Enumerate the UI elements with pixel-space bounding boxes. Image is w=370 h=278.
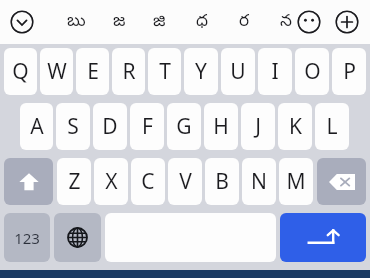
button[interactable]: M (279, 158, 313, 205)
staticText: G (176, 112, 192, 141)
button[interactable]: L (315, 103, 349, 150)
button[interactable]: 123 (4, 213, 50, 262)
button[interactable]: N (242, 158, 276, 205)
button[interactable]: న (270, 6, 302, 38)
staticText: B (215, 167, 229, 196)
staticText: Q (12, 57, 29, 86)
button[interactable]: Switch language (54, 213, 101, 262)
button[interactable]: బు (60, 6, 92, 38)
staticText: ర (239, 11, 250, 34)
button[interactable]: Q (4, 48, 37, 95)
button[interactable]: A (20, 103, 53, 150)
button[interactable]: జి (143, 6, 175, 38)
staticText: T (159, 57, 171, 86)
button[interactable]: More options (335, 10, 359, 34)
button[interactable]: R (112, 48, 145, 95)
button[interactable]: X (94, 158, 128, 205)
staticText: H (213, 112, 229, 141)
staticText: I (271, 57, 279, 86)
button[interactable]: G (167, 103, 201, 150)
staticText: X (105, 167, 118, 196)
staticText: Z (68, 167, 81, 196)
staticText: బు (67, 11, 86, 34)
staticText: న (280, 11, 292, 34)
staticText: S (67, 112, 79, 141)
button[interactable]: Enter (280, 213, 366, 262)
button[interactable]: S (56, 103, 90, 150)
button[interactable]: I (258, 48, 292, 95)
staticText: 123 (14, 228, 40, 248)
button[interactable]: Backspace (317, 158, 366, 205)
staticText: P (343, 57, 356, 86)
button[interactable]: O (295, 48, 329, 95)
staticText: Y (195, 57, 207, 86)
button[interactable]: D (93, 103, 127, 150)
button[interactable]: H (204, 103, 238, 150)
button[interactable]: J (241, 103, 275, 150)
staticText: జ (113, 11, 126, 34)
staticText: J (255, 112, 261, 141)
button[interactable]: Shift (4, 158, 53, 205)
staticText: C (141, 167, 155, 196)
staticText: F (142, 112, 153, 141)
staticText: A (30, 112, 44, 141)
button[interactable]: W (40, 48, 73, 95)
button[interactable]: B (205, 158, 239, 205)
staticText: R (122, 57, 136, 86)
staticText: L (326, 112, 338, 141)
staticText: M (286, 167, 306, 196)
staticText: K (289, 112, 302, 141)
staticText: ధ (196, 11, 209, 34)
button[interactable]: E (76, 48, 109, 95)
button[interactable]: P (332, 48, 366, 95)
staticText: D (102, 112, 118, 141)
button[interactable]: Z (57, 158, 91, 205)
staticText: W (47, 57, 67, 86)
staticText: V (179, 167, 192, 196)
button[interactable]: Y (184, 48, 218, 95)
staticText: O (304, 57, 321, 86)
staticText: జి (153, 11, 166, 34)
button[interactable]: F (130, 103, 164, 150)
button[interactable]: T (148, 48, 181, 95)
button[interactable]: U (221, 48, 255, 95)
button[interactable]: ధ (186, 6, 218, 38)
button[interactable]: C (131, 158, 165, 205)
button[interactable]: Emoji (297, 10, 321, 34)
button[interactable]: Collapse toolbar (10, 10, 34, 34)
button[interactable]: జ (103, 6, 135, 38)
button[interactable]: ర (228, 6, 260, 38)
button[interactable]: K (278, 103, 312, 150)
button[interactable]: V (168, 158, 202, 205)
staticText: N (251, 167, 267, 196)
staticText: U (230, 57, 246, 86)
staticText: E (87, 57, 99, 86)
